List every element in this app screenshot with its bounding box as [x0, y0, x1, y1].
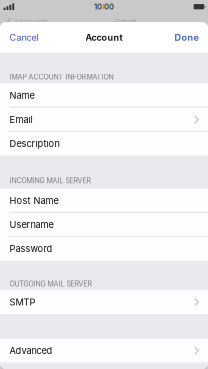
staticText: Done [174, 32, 198, 43]
staticText: Host Name [9, 195, 58, 206]
button[interactable]: Advanced [0, 339, 208, 362]
button[interactable]: Password [0, 237, 208, 261]
staticText: Name [9, 90, 34, 101]
staticText: INCOMING MAIL SERVER [9, 176, 91, 185]
button[interactable]: Host Name [0, 188, 208, 213]
staticText: Username [9, 219, 53, 230]
staticText: Account [85, 32, 122, 43]
button[interactable]: Username [0, 213, 208, 237]
button[interactable]: Email [0, 107, 208, 132]
button[interactable]: SMTP [0, 290, 208, 314]
staticText: SMTP [9, 297, 35, 308]
staticText: 10:00 [94, 2, 114, 11]
staticText: Password [9, 243, 52, 254]
staticText: OUTGOING MAIL SERVER [9, 280, 92, 288]
button[interactable]: Cancel [0, 22, 46, 53]
staticText: Advanced [9, 345, 52, 356]
button[interactable]: Name [0, 83, 208, 107]
staticText: Description [9, 138, 59, 149]
staticText: Email [9, 114, 32, 125]
staticText: Gmail [115, 17, 136, 26]
button[interactable]: Done [166, 22, 208, 53]
staticText: Accounts [14, 17, 48, 26]
button[interactable]: Description [0, 132, 208, 156]
staticText: Cancel [9, 32, 38, 43]
staticText: IMAP ACCOUNT INFORMATION [9, 73, 113, 81]
